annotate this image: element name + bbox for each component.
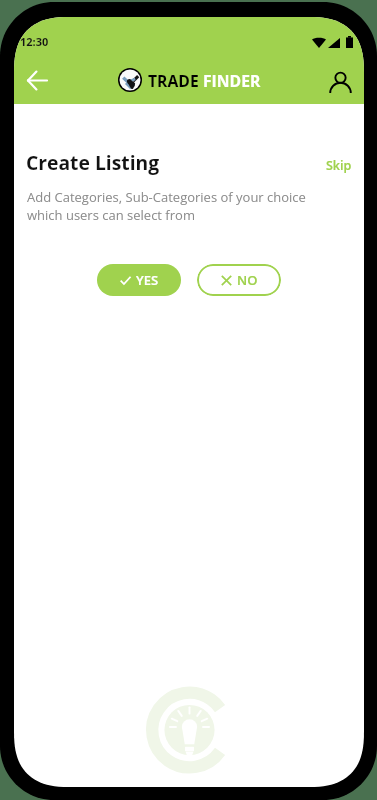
staticText: Create Listing: [26, 149, 160, 175]
staticText: Add Categories, Sub-Categories of your c…: [27, 188, 306, 224]
staticText: TRADE: [148, 70, 203, 91]
staticText: NO: [237, 271, 258, 289]
button[interactable]: Back: [17, 60, 57, 100]
button[interactable]: NO: [197, 264, 281, 296]
staticText: FINDER: [203, 70, 261, 91]
staticText: YES: [136, 271, 159, 289]
staticText: 12:30: [20, 34, 49, 49]
button[interactable]: YES: [97, 264, 181, 296]
button[interactable]: Skip: [321, 153, 357, 178]
button[interactable]: Profile: [320, 62, 360, 102]
staticText: Skip: [326, 157, 352, 174]
